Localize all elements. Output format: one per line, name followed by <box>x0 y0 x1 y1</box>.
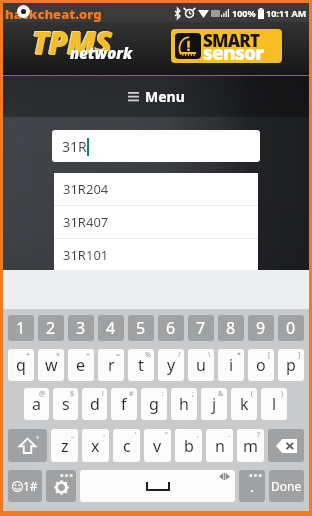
staticText: o <box>256 354 266 376</box>
button[interactable]: e <box>68 349 94 381</box>
staticText: ' <box>135 430 137 440</box>
button[interactable]: u <box>188 349 214 381</box>
staticText: Done <box>271 478 302 494</box>
staticText: w <box>45 354 58 376</box>
staticText: 31R <box>62 137 87 156</box>
button[interactable]: 0 <box>278 315 304 341</box>
button[interactable]: m <box>237 429 264 462</box>
button[interactable]: j <box>201 388 227 420</box>
staticText: a <box>32 393 41 415</box>
button[interactable]: t <box>128 349 154 381</box>
button[interactable]: 3 <box>68 315 94 341</box>
button[interactable]: o <box>248 349 274 381</box>
button[interactable]: y <box>158 349 184 381</box>
button[interactable]: 9 <box>248 315 274 341</box>
staticText: 31R204 <box>63 180 109 198</box>
staticText: 9 <box>256 317 266 339</box>
button[interactable]: 5 <box>128 315 154 341</box>
button[interactable]: z <box>51 429 78 462</box>
button[interactable]: Space <box>80 470 235 502</box>
staticText: ( <box>251 389 254 399</box>
staticText: u <box>196 354 206 376</box>
button[interactable]: Backspace <box>268 429 304 462</box>
staticText: 100% <box>232 7 256 19</box>
staticText: " <box>165 430 168 440</box>
staticText: hackcheat.org <box>5 5 102 23</box>
button[interactable]: i <box>218 349 244 381</box>
staticText: @ <box>39 389 46 399</box>
staticText: Menu <box>145 87 185 106</box>
staticText: . <box>250 476 255 496</box>
button[interactable]: p <box>278 349 304 381</box>
staticText: \ <box>208 350 211 360</box>
staticText: 31R101 <box>63 246 109 264</box>
staticText: $ <box>70 389 75 399</box>
staticText: ! <box>102 389 104 399</box>
staticText: 4 <box>106 317 116 339</box>
staticText: , <box>197 430 199 440</box>
button[interactable]: . <box>239 470 265 502</box>
staticText: q <box>16 354 26 376</box>
button[interactable]: Shift <box>8 429 47 462</box>
staticText: x <box>91 435 100 457</box>
staticText: v <box>153 435 162 457</box>
button[interactable]: 8 <box>218 315 244 341</box>
staticText: ] <box>298 350 301 360</box>
staticText: network <box>70 43 133 63</box>
staticText: h <box>179 393 189 415</box>
button[interactable]: 31R407 <box>54 206 258 238</box>
button[interactable]: g <box>141 388 167 420</box>
staticText: / <box>178 350 181 360</box>
button[interactable]: d <box>82 388 107 420</box>
staticText: n <box>215 435 225 457</box>
button[interactable]: r <box>98 349 124 381</box>
staticText: 0 <box>286 317 296 339</box>
button[interactable]: 31R101 <box>54 239 258 270</box>
staticText: m <box>243 435 258 457</box>
staticText: network <box>71 44 134 64</box>
staticText: 2 <box>46 317 56 339</box>
button[interactable]: b <box>175 429 202 462</box>
button[interactable]: x <box>82 429 109 462</box>
staticText: × <box>56 350 61 360</box>
button[interactable]: n <box>206 429 233 462</box>
button[interactable]: 7 <box>188 315 214 341</box>
button[interactable]: 6 <box>158 315 184 341</box>
button[interactable]: l <box>261 388 287 420</box>
button[interactable]: 2 <box>38 315 64 341</box>
button[interactable]: v <box>144 429 171 462</box>
button[interactable]: a <box>24 388 49 420</box>
button[interactable]: q <box>8 349 34 381</box>
button[interactable]: 1 <box>8 315 34 341</box>
button[interactable]: 31R204 <box>54 173 258 205</box>
button[interactable]: Menu <box>3 76 309 117</box>
staticText: - <box>103 430 106 440</box>
button[interactable]: 4 <box>98 315 124 341</box>
button[interactable]: k <box>231 388 257 420</box>
staticText: # <box>129 389 134 399</box>
button[interactable]: 31R <box>52 130 260 162</box>
staticText: sensor <box>203 40 264 63</box>
staticText: j <box>212 393 217 415</box>
button[interactable]: Keyboard settings <box>46 470 76 502</box>
staticText: 7 <box>196 317 206 339</box>
staticText: f <box>121 393 127 415</box>
staticText: r <box>108 354 115 376</box>
button[interactable]: f <box>111 388 137 420</box>
staticText: ÷ <box>86 350 91 360</box>
staticText: + <box>26 350 31 360</box>
staticText: & <box>218 389 224 399</box>
staticText: = <box>116 350 121 360</box>
staticText: 6 <box>166 317 176 339</box>
staticText: : <box>162 389 164 399</box>
button[interactable]: c <box>113 429 140 462</box>
button[interactable]: s <box>53 388 78 420</box>
button[interactable]: Done <box>269 470 304 502</box>
staticText: e <box>76 354 86 376</box>
staticText: k <box>240 393 249 415</box>
button[interactable]: w <box>38 349 64 381</box>
staticText: SMART <box>203 29 260 52</box>
button[interactable]: Symbols <box>8 470 42 502</box>
button[interactable]: h <box>171 388 197 420</box>
staticText: 10:11 AM <box>266 7 307 19</box>
